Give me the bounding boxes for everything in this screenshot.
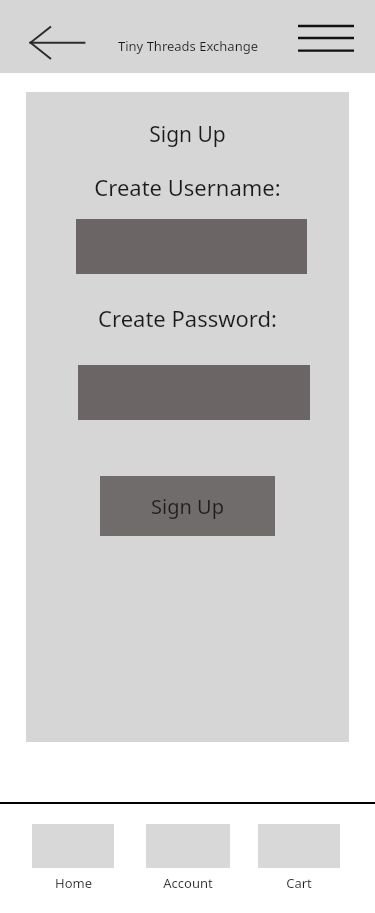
staticText: Sign Up	[151, 493, 224, 520]
staticText: Home	[55, 874, 92, 892]
staticText: Tiny Threads Exchange	[118, 37, 258, 55]
button[interactable]: Back	[22, 22, 90, 62]
staticText: Account	[163, 874, 213, 892]
button[interactable]: Home	[32, 824, 114, 892]
staticText: Create Password:	[26, 303, 349, 333]
button[interactable]: Sign Up	[100, 476, 275, 536]
button[interactable]: Account	[146, 824, 230, 892]
button[interactable]: Cart	[258, 824, 340, 892]
staticText: Sign Up	[26, 120, 349, 149]
staticText: Create Username:	[26, 172, 349, 202]
button[interactable]: Menu	[292, 16, 360, 60]
staticText: Cart	[286, 874, 312, 892]
